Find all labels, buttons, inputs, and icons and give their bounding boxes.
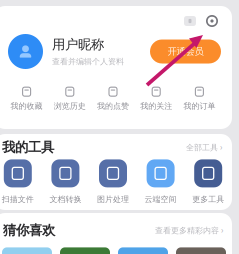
staticText: 浏览历史: [54, 101, 86, 111]
staticText: 查看并编辑个人资料: [52, 57, 124, 67]
staticText: 全部工具 ›: [186, 142, 222, 152]
button[interactable]: 更多工具: [184, 159, 232, 204]
staticText: 我的关注: [140, 101, 172, 111]
staticText: 开通会员: [167, 46, 203, 57]
staticText: 我的收藏: [11, 101, 43, 111]
button[interactable]: 云端空间: [137, 159, 184, 204]
staticText: 查看更多精彩内容 ›: [155, 225, 223, 235]
staticText: 我的工具: [2, 139, 54, 155]
staticText: 云端空间: [145, 194, 177, 204]
staticText: 猜你喜欢: [3, 222, 55, 238]
button[interactable]: 我的收藏: [5, 86, 48, 111]
button[interactable]: 图片处理: [89, 159, 137, 204]
button[interactable]: Profile photo: [8, 34, 43, 69]
button[interactable]: 我的点赞: [91, 86, 135, 111]
button[interactable]: 文档转换: [42, 159, 89, 204]
button[interactable]: 查看更多精彩内容 ›: [155, 225, 223, 235]
button[interactable]: Settings: [202, 11, 222, 31]
staticText: 我的订单: [183, 101, 215, 111]
staticText: 图片处理: [97, 194, 129, 204]
button[interactable]: 全部工具 ›: [186, 142, 222, 152]
staticText: 扫描文件: [2, 194, 34, 204]
staticText: 用户昵称: [52, 36, 104, 53]
button[interactable]: 我的订单: [178, 86, 221, 111]
staticText: 更多工具: [192, 194, 224, 204]
button[interactable]: Member card: [180, 11, 200, 31]
staticText: 我的点赞: [97, 101, 129, 111]
button[interactable]: 浏览历史: [48, 86, 91, 111]
button[interactable]: 开通会员: [150, 39, 221, 63]
staticText: 文档转换: [49, 194, 81, 204]
button[interactable]: 扫描文件: [0, 159, 42, 204]
button[interactable]: 我的关注: [135, 86, 178, 111]
